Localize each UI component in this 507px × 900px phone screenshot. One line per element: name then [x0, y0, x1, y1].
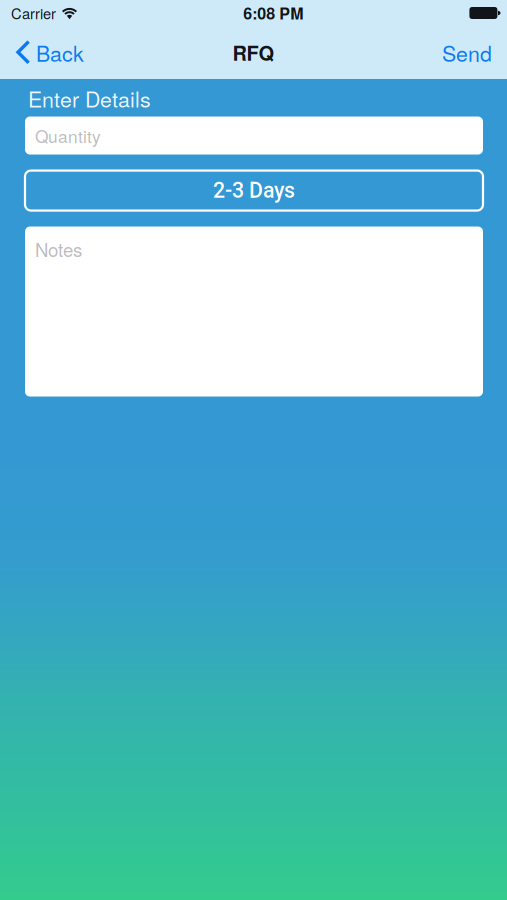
button[interactable]: Send: [428, 28, 507, 76]
button[interactable]: Back: [0, 28, 96, 76]
staticText: Quantity: [35, 123, 101, 148]
staticText: 6:08 PM: [243, 1, 303, 24]
button[interactable]: Notes: [25, 226, 483, 396]
staticText: 2-3 Days: [213, 178, 295, 203]
staticText: Enter Details: [28, 83, 151, 113]
staticText: Send: [442, 37, 492, 68]
staticText: Carrier: [11, 2, 56, 23]
staticText: Back: [36, 37, 84, 68]
button[interactable]: 2-3 Days: [25, 170, 483, 210]
button[interactable]: Quantity: [25, 116, 483, 154]
staticText: Notes: [35, 235, 82, 262]
staticText: RFQ: [232, 38, 274, 67]
